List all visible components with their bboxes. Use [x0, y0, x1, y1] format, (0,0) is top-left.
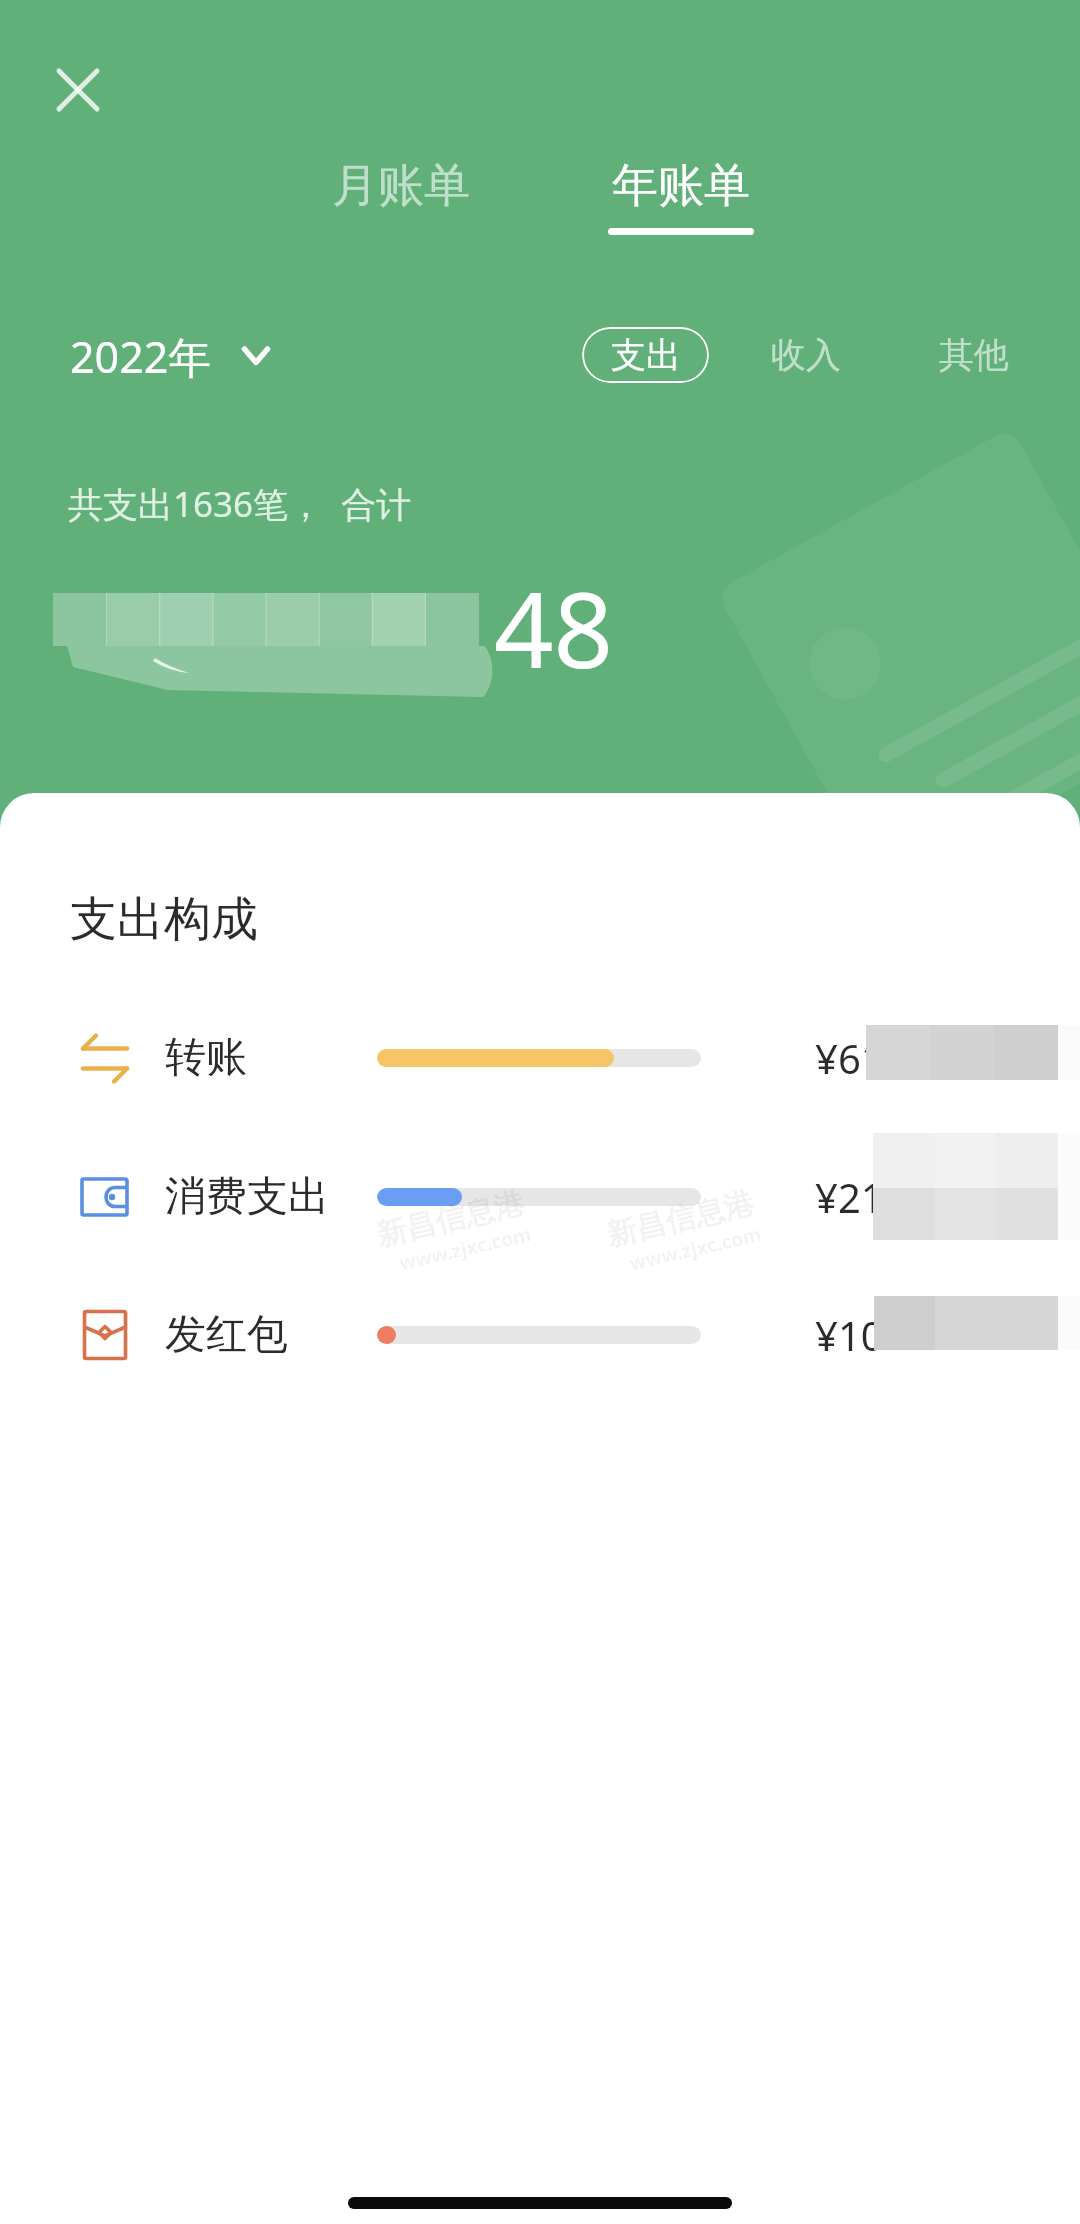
staticText: 年账单 — [612, 157, 750, 215]
staticText: 共支出1636笔， 合计 — [68, 480, 412, 528]
button[interactable]: 2022年 — [60, 322, 280, 390]
button[interactable]: 消费支出 — [0, 1127, 1080, 1266]
staticText: ¥61 — [815, 1031, 884, 1085]
button[interactable]: 年账单 — [561, 157, 801, 267]
button[interactable]: 支出 — [582, 327, 709, 383]
staticText: ¥21 — [815, 1170, 884, 1224]
button[interactable]: 收入 — [758, 327, 854, 383]
button[interactable]: Close — [38, 50, 118, 129]
staticText: 支出 — [611, 333, 681, 377]
staticText: www.zjxc.com — [627, 1221, 764, 1276]
staticText: www.zjxc.com — [397, 1221, 534, 1276]
staticText: 消费支出 — [165, 1171, 329, 1223]
staticText: 48 — [494, 557, 613, 699]
staticText: 收入 — [771, 333, 841, 377]
staticText: 其他 — [939, 333, 1009, 377]
staticText: 新昌信息港 — [373, 1184, 527, 1255]
staticText: 发红包 — [165, 1309, 288, 1361]
staticText: 2022年 — [70, 327, 212, 386]
button[interactable]: 月账单 — [281, 157, 521, 267]
staticText: 新昌信息港 — [603, 1184, 757, 1255]
staticText: 转账 — [165, 1032, 247, 1084]
button[interactable]: 其他 — [926, 327, 1022, 383]
staticText: 支出构成 — [70, 890, 258, 949]
button[interactable]: 转账 — [0, 988, 1080, 1127]
staticText: 月账单 — [332, 157, 470, 215]
staticText: ¥10 — [815, 1308, 884, 1362]
button[interactable]: 发红包 — [0, 1265, 1080, 1404]
